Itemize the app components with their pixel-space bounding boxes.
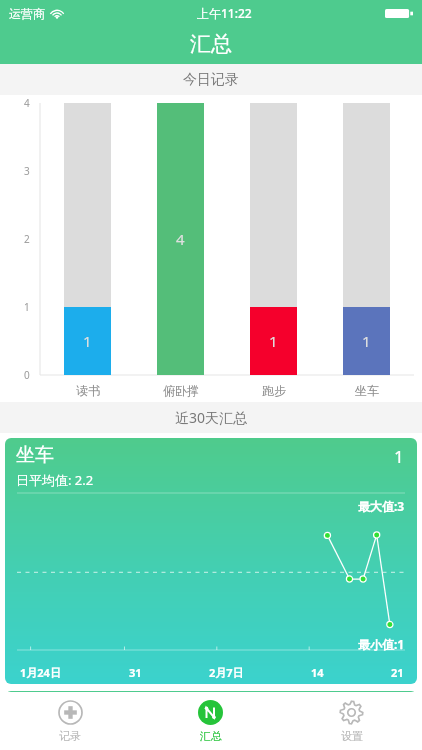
staticText: 1 xyxy=(362,331,371,351)
staticText: 今日记录 xyxy=(183,71,239,89)
button[interactable]: 跑步 xyxy=(5,691,417,736)
staticText: 俯卧撑 xyxy=(163,383,199,398)
other: 汇总 xyxy=(198,700,223,725)
staticText: 记录 xyxy=(59,729,81,743)
staticText: 上午11:22 xyxy=(197,5,252,21)
staticText: 21 xyxy=(391,665,404,680)
staticText: 2 xyxy=(24,232,30,246)
staticText: 1 xyxy=(24,300,30,314)
staticText: 1月24日 xyxy=(20,665,61,680)
staticText: 4 xyxy=(176,229,185,249)
staticText: 最小值:1 xyxy=(358,636,405,652)
button[interactable]: 设置 xyxy=(281,692,422,750)
staticText: 0 xyxy=(24,368,30,382)
other: 设置 xyxy=(339,700,364,725)
staticText: 3 xyxy=(24,164,30,178)
staticText: 近30天汇总 xyxy=(175,408,248,427)
other: 记录 xyxy=(58,700,83,725)
staticText: 坐车 xyxy=(355,383,379,398)
button[interactable]: 记录 xyxy=(0,692,140,750)
staticText: 2月7日 xyxy=(209,665,244,680)
staticText: 31 xyxy=(129,665,142,680)
staticText: 日平均值: 2.2 xyxy=(16,471,94,489)
staticText: 运营商 xyxy=(9,6,45,21)
staticText: 设置 xyxy=(341,729,363,743)
staticText: 14 xyxy=(311,665,324,680)
staticText: 1 xyxy=(83,331,92,351)
staticText: 4 xyxy=(24,96,30,110)
button[interactable]: 坐车 xyxy=(5,438,417,684)
staticText: 读书 xyxy=(76,383,100,398)
staticText: 1 xyxy=(269,331,278,351)
staticText: 汇总 xyxy=(190,31,232,57)
staticText: 汇总 xyxy=(200,729,222,743)
staticText: 坐车 xyxy=(16,443,54,467)
staticText: 1 xyxy=(394,445,404,468)
staticText: 跑步 xyxy=(262,383,286,398)
staticText: 最大值:3 xyxy=(358,498,405,514)
button[interactable]: 汇总 xyxy=(140,692,281,750)
